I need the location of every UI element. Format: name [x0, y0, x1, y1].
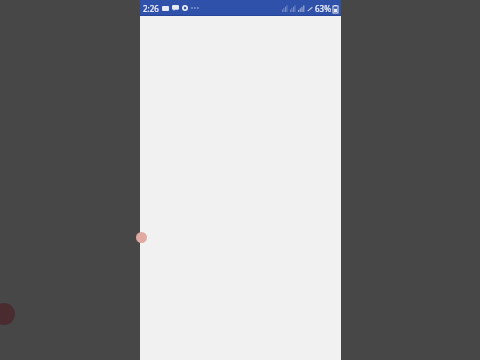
staticText: 63% [315, 3, 331, 14]
staticText: 2:26 [143, 3, 159, 14]
